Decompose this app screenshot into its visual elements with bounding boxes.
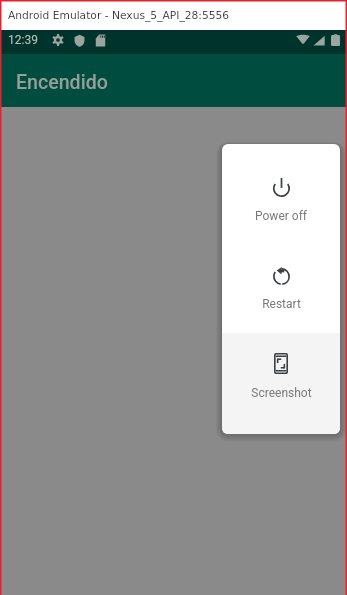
staticText: Android Emulator - Nexus_5_API_28:5556 <box>8 9 230 21</box>
button[interactable]: Restart <box>222 239 340 333</box>
button[interactable]: Power off <box>222 144 340 239</box>
staticText: Screenshot <box>251 386 312 400</box>
staticText: Encendido <box>16 71 108 94</box>
staticText: Power off <box>255 209 307 223</box>
button[interactable]: Screenshot <box>222 333 340 434</box>
staticText: Restart <box>262 297 301 311</box>
staticText: 12:39 <box>8 33 38 47</box>
